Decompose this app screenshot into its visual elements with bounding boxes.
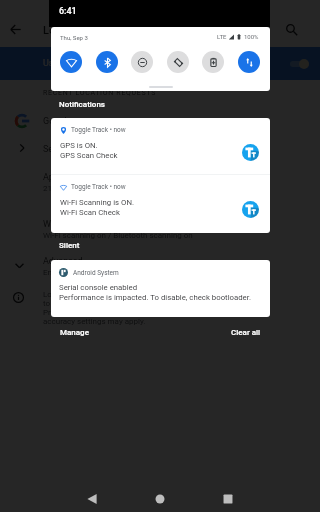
button[interactable]: Manage bbox=[51, 325, 98, 340]
staticText: Wi-Fi scanning on / Bluetooth scanning o… bbox=[43, 231, 193, 240]
staticText: Wi-Fi Scanning is ON. Wi-Fi Scan Check bbox=[60, 198, 135, 217]
staticText: Location services can use sources to hel… bbox=[43, 290, 181, 326]
staticText: See all bbox=[43, 144, 70, 155]
button[interactable]: Auto-rotate bbox=[167, 51, 189, 73]
staticText: GPS is ON. GPS Scan Check bbox=[60, 141, 118, 160]
staticText: Notifications bbox=[59, 100, 105, 109]
button[interactable]: Home bbox=[153, 492, 167, 506]
button[interactable]: Battery Saver bbox=[202, 51, 224, 73]
button[interactable]: Search bbox=[285, 23, 298, 36]
staticText: App-level permissions bbox=[43, 172, 132, 183]
staticText: Toggle Track • now bbox=[71, 126, 126, 134]
button[interactable]: Back bbox=[9, 23, 22, 36]
staticText: Thu, Sep 3 bbox=[60, 34, 88, 41]
button[interactable]: Toggle Track • now bbox=[51, 118, 270, 174]
button[interactable]: Bluetooth bbox=[96, 51, 118, 73]
staticText: Wi-Fi and Bluetooth scanning bbox=[43, 219, 160, 230]
staticText: 6:41 bbox=[59, 6, 77, 17]
staticText: Serial console enabled Performance is im… bbox=[59, 283, 251, 302]
button[interactable]: Android System bbox=[51, 260, 270, 317]
button[interactable]: Clear all bbox=[222, 325, 270, 340]
staticText: LTE bbox=[217, 33, 227, 40]
staticText: Google bbox=[43, 116, 72, 127]
staticText: Silent bbox=[59, 241, 80, 250]
staticText: Location bbox=[43, 24, 86, 37]
staticText: Advanced bbox=[43, 256, 83, 267]
staticText: Emergency Location Service, Google bbox=[43, 268, 173, 277]
button[interactable]: Recent apps bbox=[221, 492, 235, 506]
button[interactable]: Wi-Fi bbox=[60, 51, 82, 73]
staticText: 100% bbox=[244, 33, 259, 40]
button[interactable]: Toggle Track • now bbox=[51, 175, 270, 231]
button[interactable]: Mobile data bbox=[238, 51, 260, 73]
staticText: 21 of 38 apps allowed bbox=[43, 184, 122, 193]
staticText: Manage bbox=[60, 328, 89, 337]
button[interactable]: Do not disturb bbox=[131, 51, 153, 73]
staticText: Toggle Track • now bbox=[71, 183, 126, 191]
staticText: Clear all bbox=[231, 328, 261, 337]
button[interactable]: Use location bbox=[0, 47, 320, 80]
staticText: Android System bbox=[73, 269, 119, 277]
button[interactable]: Back bbox=[85, 492, 99, 506]
staticText: RECENT LOCATION REQUESTS bbox=[43, 89, 157, 97]
staticText: Use location bbox=[43, 58, 93, 69]
